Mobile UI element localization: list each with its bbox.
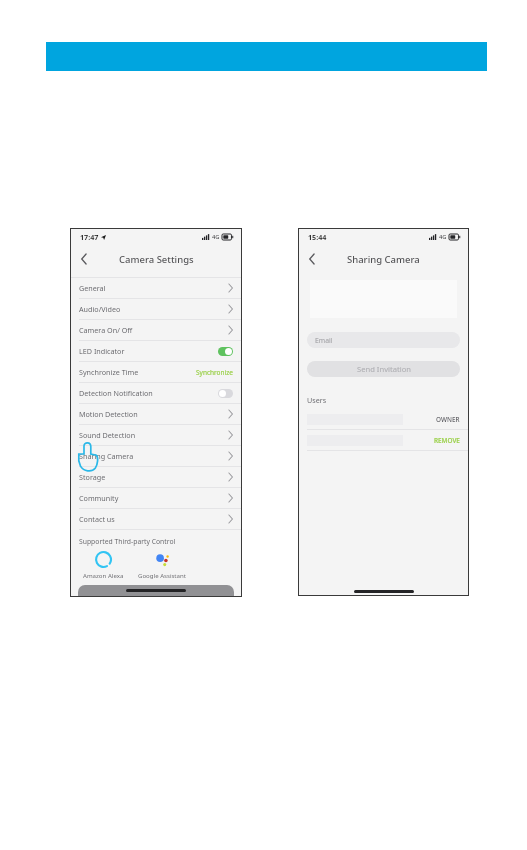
staticText: Synchronize Time	[79, 367, 139, 377]
staticText: Camera Settings	[119, 253, 194, 266]
button[interactable]: Contact us	[70, 509, 242, 529]
staticText: OWNER	[436, 415, 460, 424]
button[interactable]: Storage	[70, 467, 242, 487]
staticText: Supported Third-party Control	[79, 537, 176, 546]
button[interactable]: Amazon Alexa	[79, 551, 127, 579]
button[interactable]: Email	[307, 332, 460, 348]
button[interactable]: LED Indicator	[70, 341, 242, 361]
staticText: Sharing Camera	[79, 451, 134, 461]
button[interactable]: REMOVE	[298, 430, 469, 450]
staticText: Users	[307, 395, 327, 405]
staticText: Sound Detection	[79, 430, 136, 440]
staticText: REMOVE	[434, 436, 460, 445]
button[interactable]: Back	[303, 250, 321, 268]
button[interactable]: General	[70, 278, 242, 298]
staticText: Synchronize	[196, 368, 233, 377]
button[interactable]: Google Assistant	[133, 551, 191, 579]
button[interactable]: Motion Detection	[70, 404, 242, 424]
staticText: 15:44	[308, 232, 327, 242]
staticText: Camera On/ Off	[79, 325, 133, 335]
staticText: Motion Detection	[79, 409, 138, 419]
staticText: Sharing Camera	[347, 253, 420, 266]
staticText: Audio/Video	[79, 304, 121, 314]
staticText: 17:47	[80, 232, 99, 242]
button[interactable]: Sound Detection	[70, 425, 242, 445]
staticText: 4G	[439, 233, 447, 241]
staticText: Contact us	[79, 514, 115, 524]
button[interactable]: Audio/Video	[70, 299, 242, 319]
button[interactable]: Toggle on	[218, 347, 233, 356]
staticText: Email	[315, 336, 333, 345]
button[interactable]: OWNER	[298, 409, 469, 429]
staticText: LED Indicator	[79, 346, 125, 356]
button[interactable]: Toggle off	[218, 389, 233, 398]
staticText: Send Invitation	[357, 364, 411, 374]
button[interactable]: Send Invitation	[307, 361, 460, 377]
button[interactable]: Sharing Camera	[70, 446, 242, 466]
staticText: 4G	[212, 233, 220, 241]
staticText: Google Assistant	[138, 571, 186, 579]
staticText: Community	[79, 493, 119, 503]
button[interactable]: Synchronize Time	[70, 362, 242, 382]
button[interactable]: Back	[75, 250, 93, 268]
button[interactable]: Detection Notification	[70, 383, 242, 403]
button[interactable]: Community	[70, 488, 242, 508]
staticText: Storage	[79, 472, 106, 482]
button[interactable]: Camera On/ Off	[70, 320, 242, 340]
staticText: General	[79, 283, 106, 293]
staticText: Detection Notification	[79, 388, 153, 398]
staticText: Amazon Alexa	[83, 571, 124, 579]
